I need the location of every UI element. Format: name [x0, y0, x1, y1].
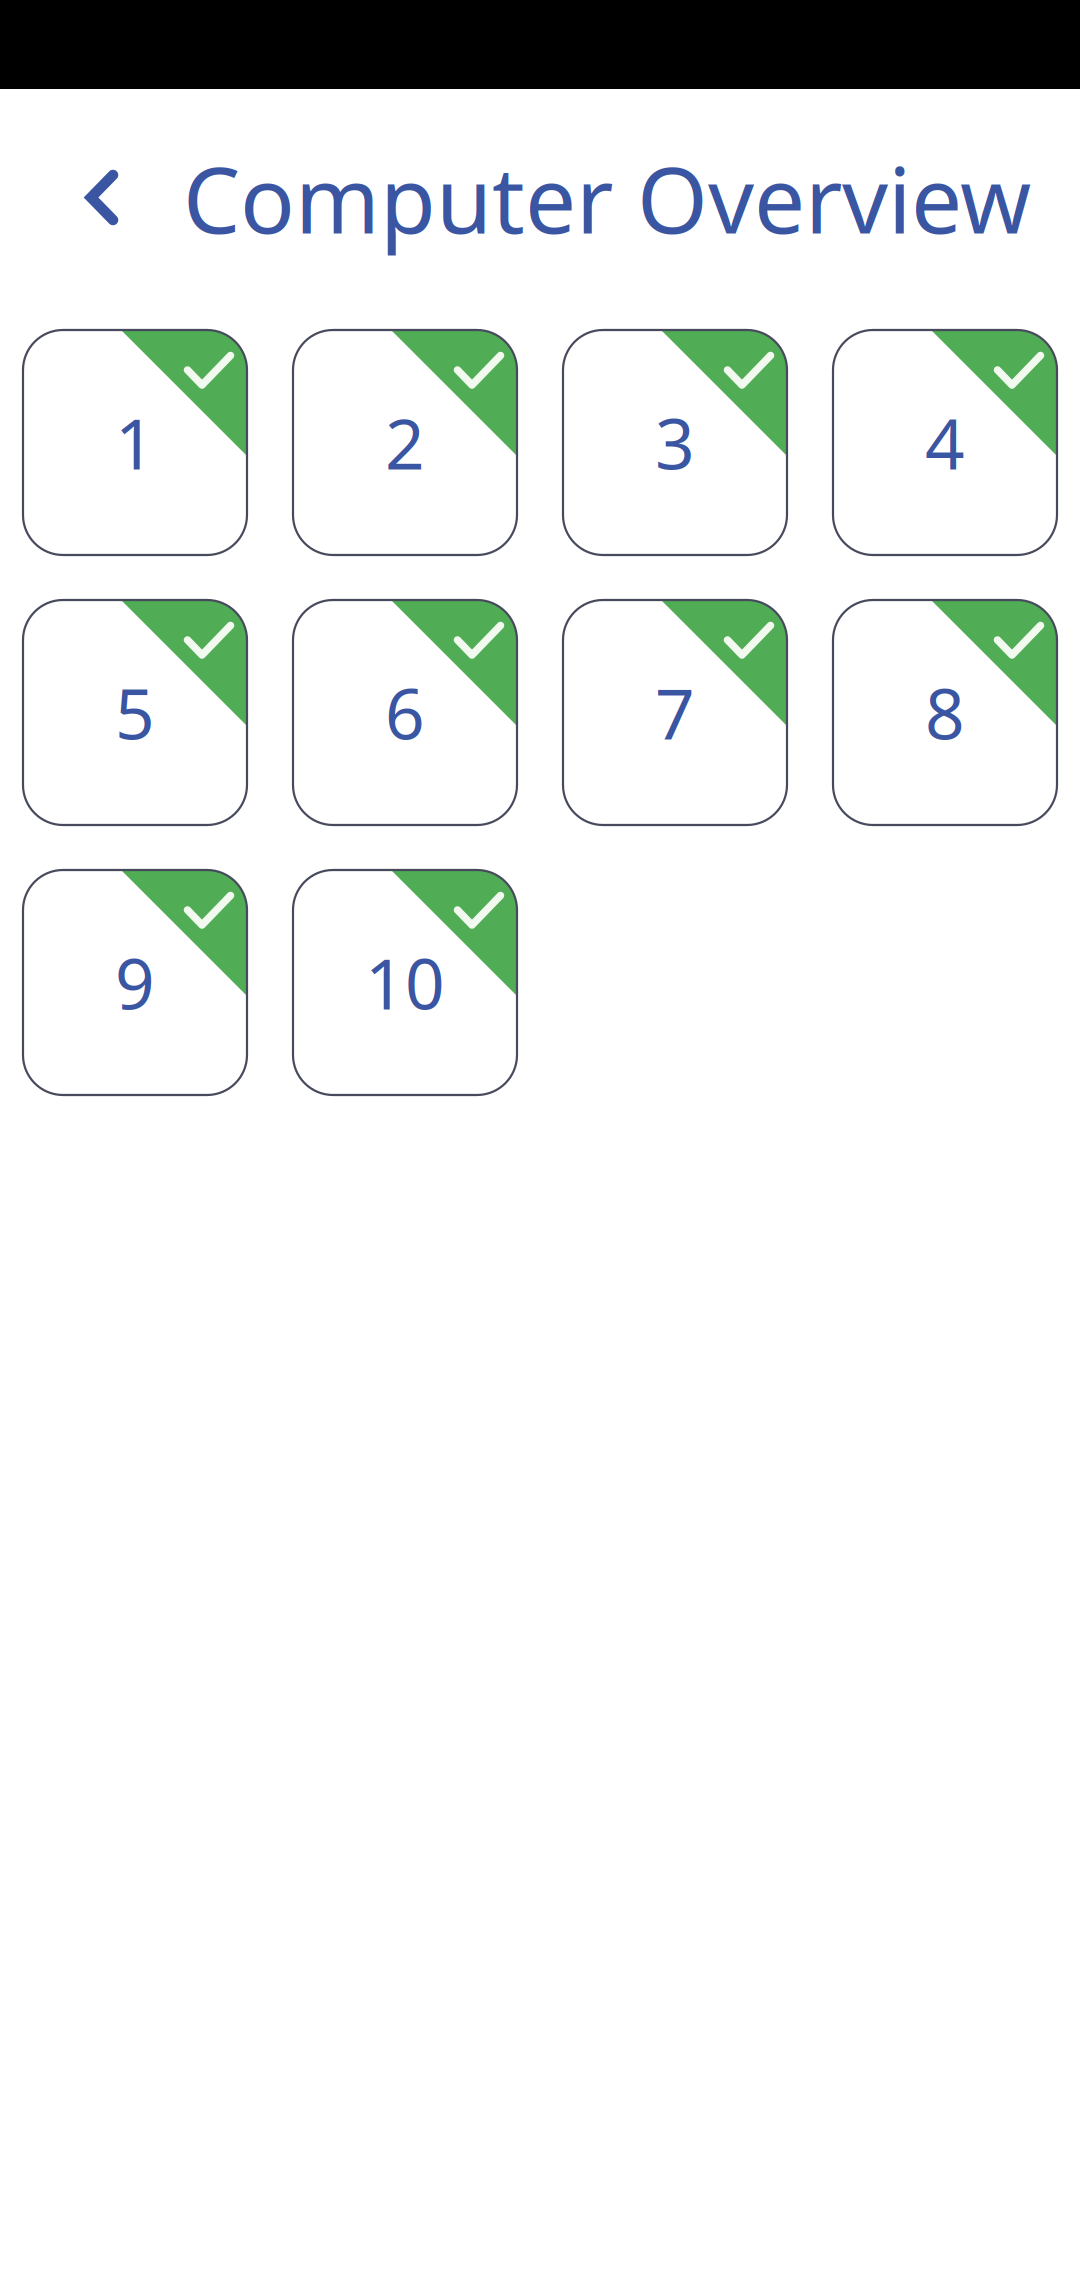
button[interactable]: 2	[293, 330, 517, 555]
staticText: 9	[115, 936, 155, 1029]
button[interactable]: 10	[293, 870, 517, 1095]
staticText: 1	[115, 396, 155, 489]
button[interactable]: Back	[41, 128, 163, 267]
staticText: 2	[385, 396, 425, 489]
button[interactable]: 1	[23, 330, 247, 555]
staticText: Computer Overview	[183, 138, 1031, 258]
staticText: 7	[655, 666, 695, 759]
staticText: 4	[925, 396, 965, 489]
button[interactable]: 6	[293, 600, 517, 825]
button[interactable]: 4	[833, 330, 1057, 555]
staticText: 10	[365, 936, 445, 1029]
button[interactable]: 5	[23, 600, 247, 825]
button[interactable]: 9	[23, 870, 247, 1095]
staticText: 5	[115, 666, 155, 759]
staticText: 3	[655, 396, 695, 489]
button[interactable]: 7	[563, 600, 787, 825]
staticText: 8	[925, 666, 965, 759]
button[interactable]: 8	[833, 600, 1057, 825]
button[interactable]: 3	[563, 330, 787, 555]
staticText: 6	[385, 666, 425, 759]
